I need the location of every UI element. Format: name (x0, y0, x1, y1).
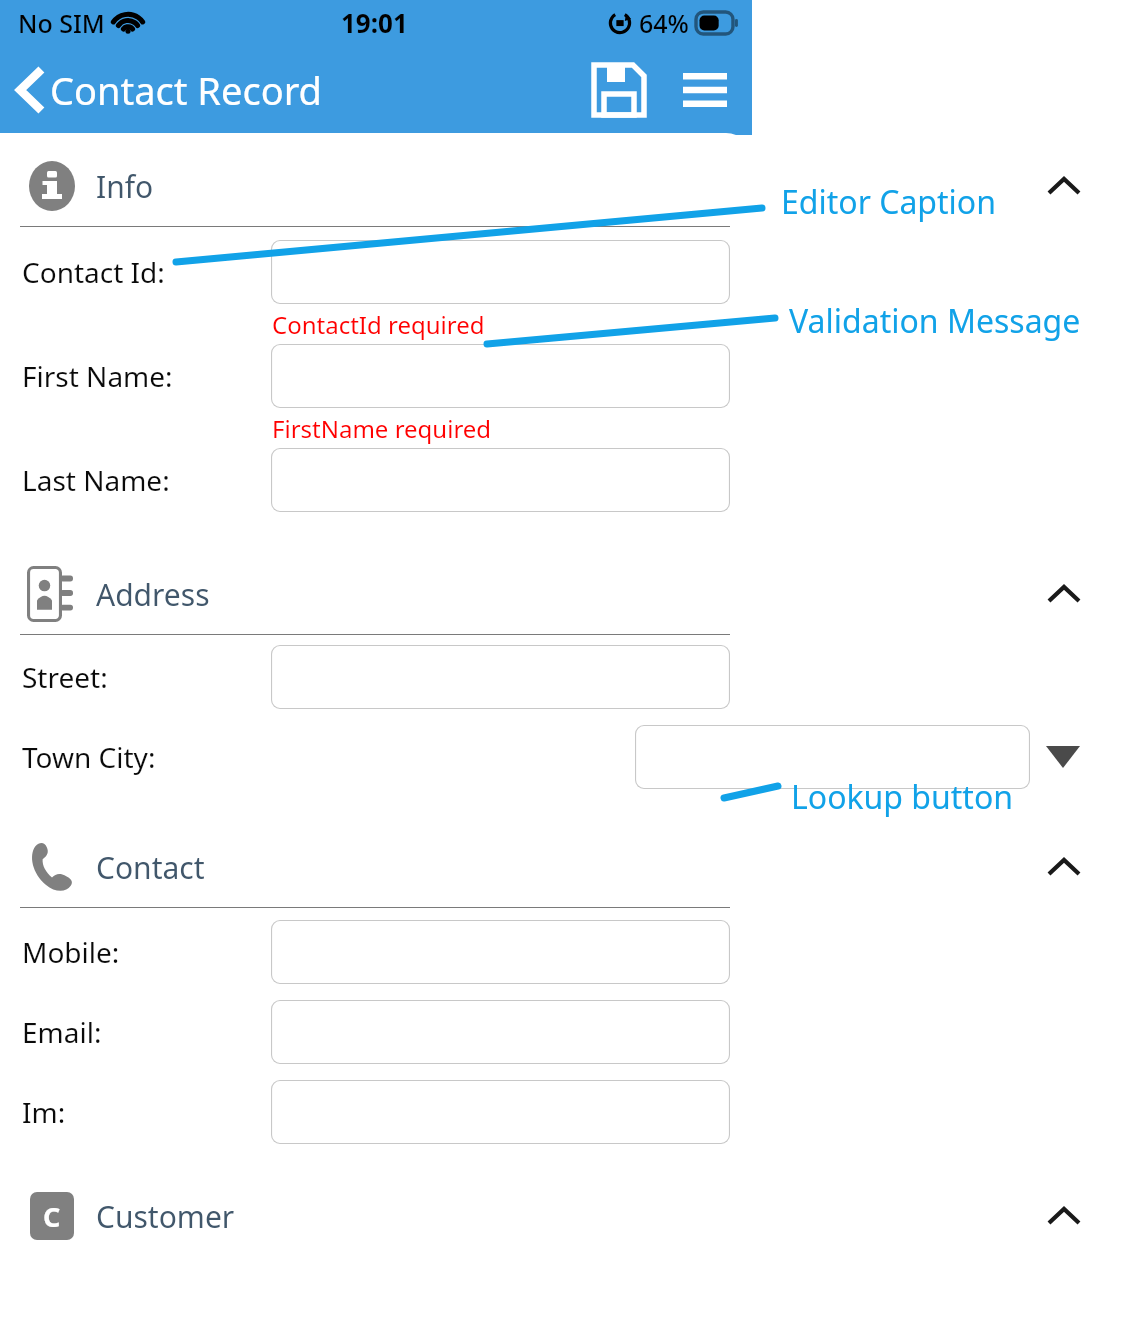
staticText: Mobile: (22, 933, 120, 971)
staticText: Street: (22, 658, 108, 696)
button[interactable] (271, 448, 730, 512)
staticText: First Name: (22, 357, 173, 395)
button[interactable]: Contact Record (0, 64, 330, 116)
button[interactable]: C (0, 1180, 1124, 1252)
staticText: Contact (96, 847, 205, 888)
staticText: Town City: (22, 738, 156, 776)
staticText: 64% (639, 6, 689, 40)
staticText: Editor Caption (781, 180, 996, 224)
button[interactable]: Save (588, 59, 650, 121)
staticText: 19:01 (341, 5, 408, 40)
staticText: Info (96, 166, 154, 207)
staticText: Address (96, 574, 210, 615)
button[interactable] (271, 1080, 730, 1144)
button[interactable] (271, 645, 730, 709)
staticText: ContactId required (272, 308, 485, 341)
staticText: Im: (22, 1093, 66, 1131)
staticText: C (43, 1198, 61, 1235)
button[interactable]: Address (0, 558, 1124, 630)
button[interactable]: Contact (0, 831, 1124, 903)
staticText: Contact Id: (22, 253, 165, 291)
button[interactable]: Info (0, 150, 1124, 222)
staticText: Last Name: (22, 461, 170, 499)
staticText: Lookup button (791, 775, 1014, 819)
staticText: Customer (96, 1196, 235, 1237)
button[interactable] (271, 240, 730, 304)
button[interactable]: Lookup (1030, 725, 1096, 789)
button[interactable] (271, 1000, 730, 1064)
button[interactable] (271, 344, 730, 408)
staticText: Contact Record (50, 64, 322, 116)
staticText: Validation Message (789, 299, 1081, 343)
button[interactable] (271, 920, 730, 984)
staticText: FirstName required (272, 412, 492, 445)
staticText: No SIM (18, 6, 105, 40)
button[interactable]: Menu (674, 59, 736, 121)
staticText: Email: (22, 1013, 102, 1051)
button[interactable] (635, 725, 1030, 789)
